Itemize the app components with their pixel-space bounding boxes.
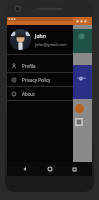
button[interactable]: John [7, 25, 73, 54]
button[interactable] [75, 118, 83, 126]
button[interactable]: Privacy Policy [7, 73, 73, 86]
staticText: Profile [22, 63, 36, 69]
button[interactable] [75, 104, 84, 113]
button[interactable]: Recent apps [68, 163, 80, 175]
staticText: About [22, 91, 35, 97]
button[interactable]: Back [19, 163, 31, 175]
button[interactable] [73, 65, 92, 99]
button[interactable]: About [7, 87, 73, 100]
button[interactable]: Home [44, 163, 56, 175]
staticText: Privacy Policy [22, 77, 51, 83]
button[interactable]: Profile [7, 59, 73, 72]
staticText: john@gmail.com [35, 42, 67, 47]
staticText: John [35, 33, 46, 40]
button[interactable] [73, 29, 92, 53]
